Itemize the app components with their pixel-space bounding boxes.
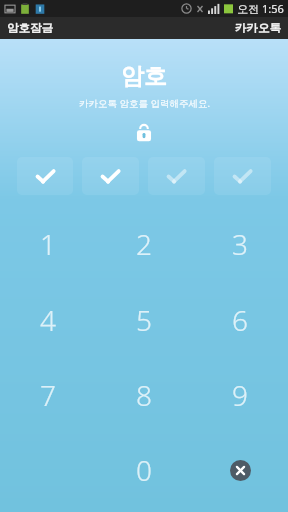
button[interactable]: 0 — [96, 437, 192, 512]
button[interactable]: 7 — [0, 362, 96, 437]
button[interactable]: Passcode digit 2 — [82, 157, 139, 195]
staticText: 암호잠금 — [7, 21, 53, 35]
button[interactable]: Passcode digit 3 — [148, 157, 205, 195]
button[interactable]: 2 — [96, 211, 192, 287]
button[interactable]: Passcode digit 1 — [17, 157, 73, 195]
button[interactable]: Delete — [192, 437, 288, 512]
staticText: 9 — [232, 376, 248, 414]
button[interactable]: 암호잠금 — [7, 21, 53, 35]
staticText: 오전 1:56 — [237, 1, 284, 16]
button[interactable]: Passcode digit 4 — [214, 157, 271, 195]
staticText: 5 — [136, 301, 152, 339]
button[interactable]: 카카오톡 — [235, 21, 281, 35]
button[interactable]: 9 — [192, 362, 288, 437]
staticText: 2 — [136, 225, 152, 263]
button[interactable]: 8 — [96, 362, 192, 437]
staticText: 4 — [40, 301, 56, 339]
staticText: 7 — [40, 376, 56, 414]
button[interactable]: 6 — [192, 287, 288, 362]
staticText: 1 — [40, 225, 56, 263]
button[interactable]: 1 — [0, 211, 96, 287]
button[interactable]: 5 — [96, 287, 192, 362]
staticText: 카카오톡 — [235, 21, 281, 35]
button[interactable]: 4 — [0, 287, 96, 362]
staticText: 0 — [136, 451, 152, 489]
staticText: 6 — [232, 301, 248, 339]
staticText: 카카오톡 암호를 입력해주세요. — [79, 97, 210, 110]
staticText: 3 — [232, 225, 248, 263]
button[interactable]: 3 — [192, 211, 288, 287]
staticText: 8 — [136, 376, 152, 414]
staticText: 암호 — [121, 62, 167, 91]
